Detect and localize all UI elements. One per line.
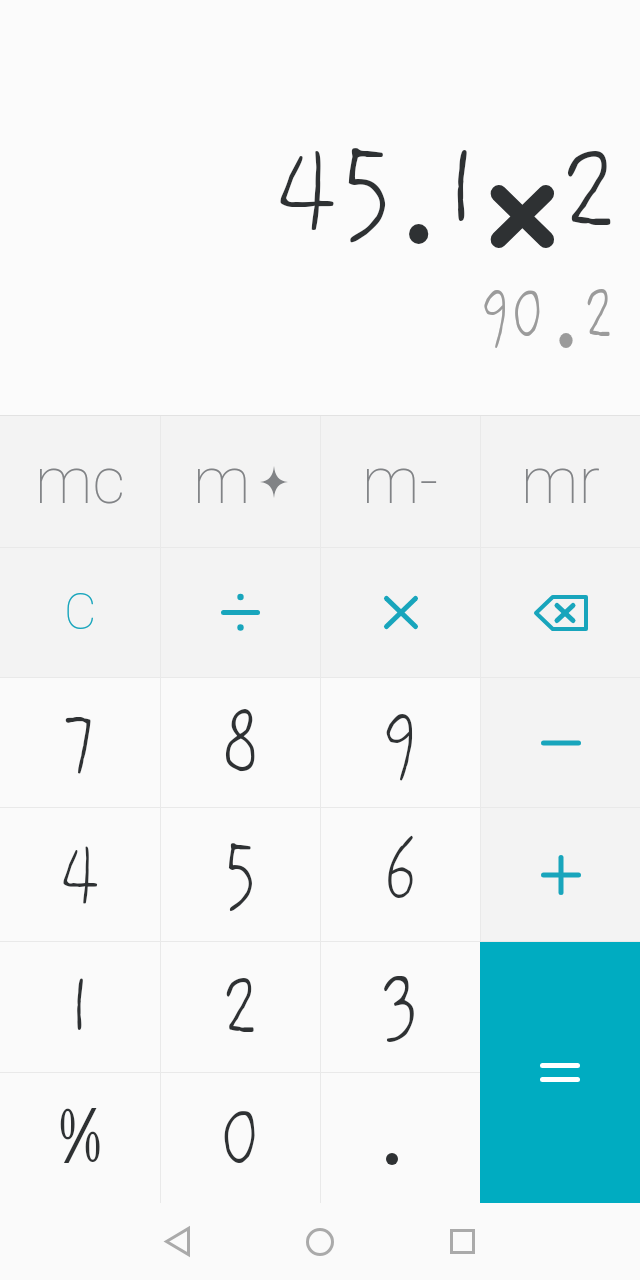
staticText: C <box>64 583 97 642</box>
button[interactable]: 7 <box>0 678 160 807</box>
button[interactable]: Back <box>106 1203 248 1280</box>
staticText: 2 <box>583 268 615 360</box>
staticText: mc <box>35 444 125 519</box>
staticText: 9 <box>381 691 420 794</box>
staticText: 1 <box>438 118 486 262</box>
button[interactable]: 1 <box>0 942 160 1072</box>
staticText: m <box>193 444 251 519</box>
button[interactable]: 0 <box>161 1073 320 1203</box>
button[interactable]: 9 <box>321 678 480 807</box>
button[interactable]: Memory add <box>161 416 320 547</box>
staticText: 3 <box>381 956 420 1059</box>
button[interactable]: 2 <box>161 942 320 1072</box>
button[interactable]: Multiply <box>321 548 480 677</box>
button[interactable]: C <box>0 548 160 677</box>
button[interactable] <box>321 1073 480 1203</box>
button[interactable]: mc <box>0 416 160 547</box>
staticText: 45 <box>273 118 396 262</box>
button[interactable]: 5 <box>161 808 320 941</box>
staticText: 2 <box>560 118 621 262</box>
button[interactable]: mr <box>481 416 640 547</box>
staticText: 8 <box>221 691 261 794</box>
staticText: mr <box>521 444 600 519</box>
button[interactable]: % <box>0 1073 160 1203</box>
button[interactable]: Home <box>248 1203 391 1280</box>
button[interactable]: m- <box>321 416 480 547</box>
button[interactable]: Equals <box>480 942 640 1203</box>
staticText: 2 <box>222 956 260 1059</box>
button[interactable]: 8 <box>161 678 320 807</box>
button[interactable]: 3 <box>321 942 480 1072</box>
button[interactable]: Divide <box>161 548 320 677</box>
staticText: m- <box>362 444 439 519</box>
staticText: % <box>57 1088 103 1188</box>
staticText: 7 <box>63 691 98 794</box>
button[interactable]: Minus <box>481 678 640 807</box>
staticText: 5 <box>222 823 259 926</box>
button[interactable]: 6 <box>321 808 480 941</box>
staticText: 4 <box>59 823 101 926</box>
button[interactable]: 4 <box>0 808 160 941</box>
button[interactable]: Backspace <box>481 548 640 677</box>
button[interactable]: Plus <box>481 808 640 941</box>
button[interactable]: Recents <box>391 1203 534 1280</box>
staticText: 90 <box>480 268 546 360</box>
staticText: 1 <box>65 956 95 1059</box>
staticText: 0 <box>219 1087 263 1190</box>
staticText: 6 <box>383 823 419 926</box>
